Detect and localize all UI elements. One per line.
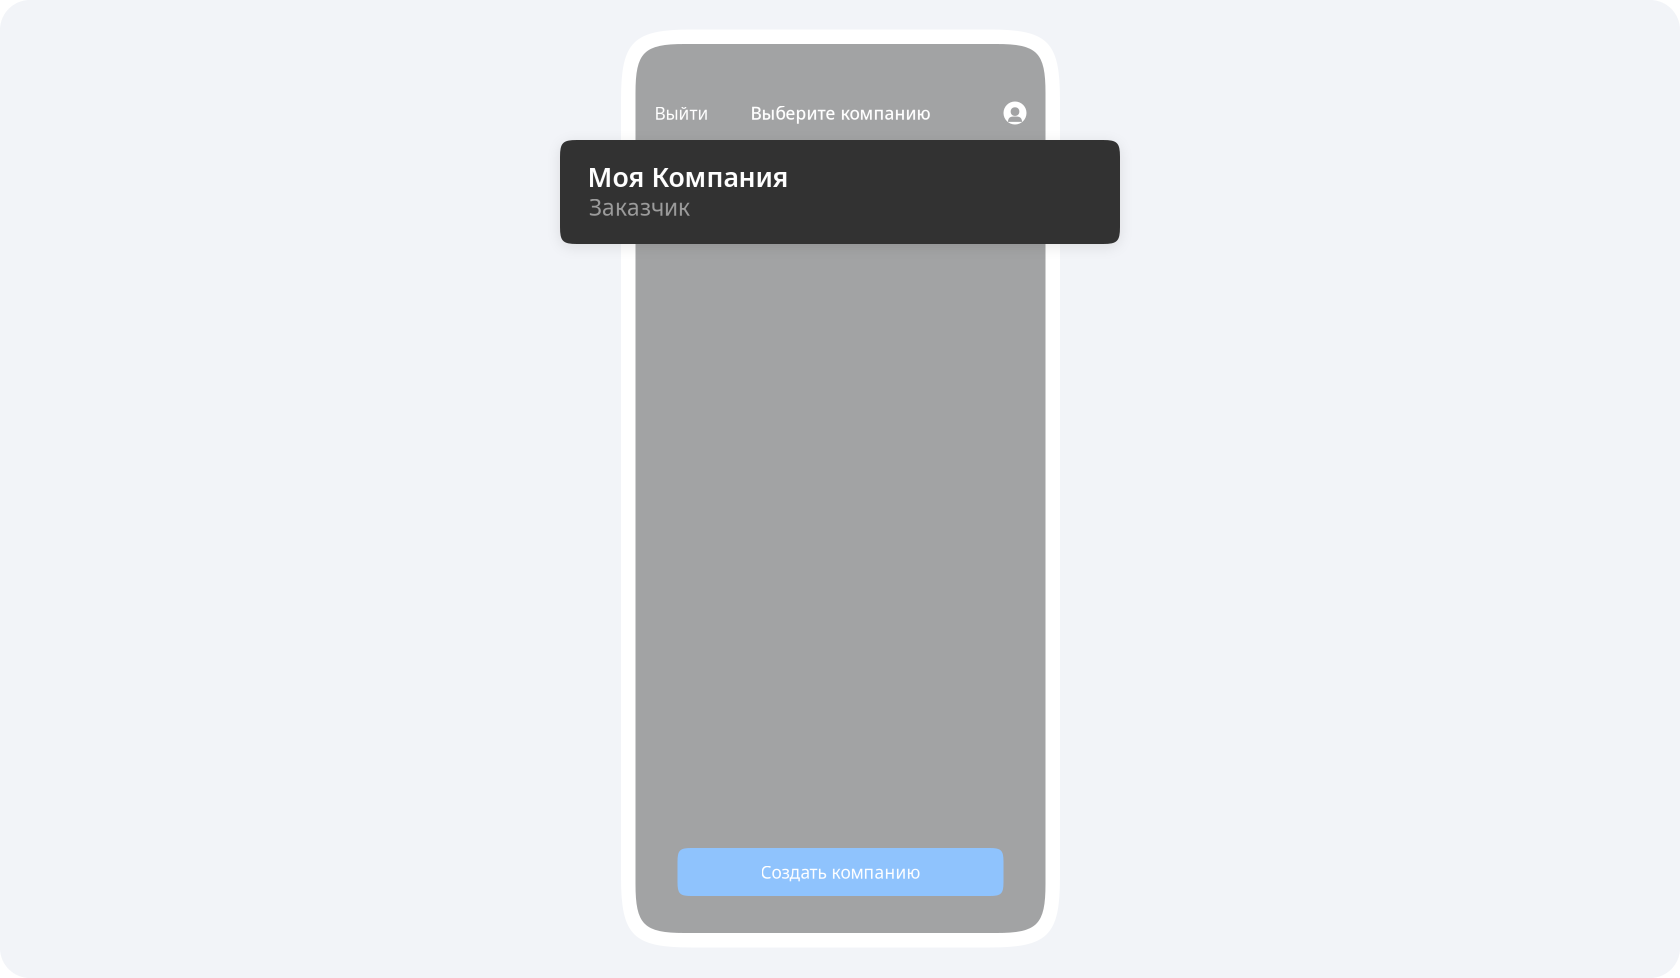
staticText: Заказчик [589, 192, 690, 222]
button[interactable]: Создать компанию [677, 848, 1003, 896]
button[interactable]: Моя Компания [560, 140, 1120, 244]
staticText: Выберите компанию [750, 101, 930, 124]
button[interactable]: Выйти [654, 101, 708, 124]
staticText: Моя Компания [587, 159, 788, 194]
button[interactable]: Аккаунт [1003, 101, 1026, 124]
staticText: Выйти [654, 101, 708, 124]
staticText: Создать компанию [760, 860, 920, 883]
